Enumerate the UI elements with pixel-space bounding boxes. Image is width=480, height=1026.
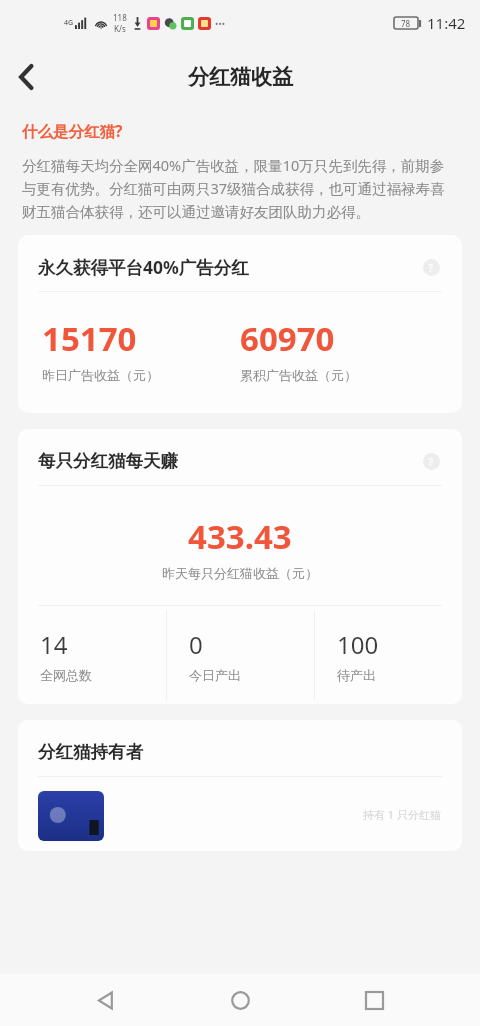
staticText: 15170 [42,316,137,361]
staticText: 433.43 [188,514,292,559]
staticText: 昨日广告收益（元） [42,367,159,383]
staticText: 78 [401,18,411,29]
staticText: 60970 [240,316,335,361]
staticText: ••• [215,17,226,29]
button[interactable]: 持有 1 只分红猫 [18,791,462,851]
button[interactable]: Help [418,254,444,280]
staticText: ? [428,454,434,469]
staticText: 11:42 [427,13,466,33]
staticText: 分红猫每天均分全网40%广告收益，限量10万只先到先得，前期参与更有优势。分红猫… [22,155,458,221]
staticText: 全网总数 [40,667,92,683]
staticText: 永久获得平台40%广告分红 [38,255,418,279]
staticText: 每只分红猫每天赚 [38,450,418,472]
staticText: 持有 1 只分红猫 [363,807,442,822]
staticText: ? [428,260,434,275]
staticText: 分红猫收益 [188,64,293,90]
staticText: 0 [189,628,203,661]
button[interactable]: Back [0,51,52,103]
button[interactable]: Recent apps [346,974,402,1026]
staticText: 昨天每只分红猫收益（元） [162,565,318,581]
button[interactable]: Help [418,448,444,474]
button[interactable]: Back [78,974,134,1026]
staticText: 14 [40,628,68,661]
staticText: 累积广告收益（元） [240,367,357,383]
staticText: 待产出 [337,667,376,683]
staticText: 什么是分红猫? [22,120,123,141]
staticText: 今日产出 [189,667,241,683]
staticText: 4G [64,18,74,28]
button[interactable]: Home [212,974,268,1026]
staticText: K/s [114,23,126,34]
staticText: 118 [113,12,127,23]
staticText: 分红猫持有者 [38,741,143,763]
staticText: 100 [337,628,379,661]
